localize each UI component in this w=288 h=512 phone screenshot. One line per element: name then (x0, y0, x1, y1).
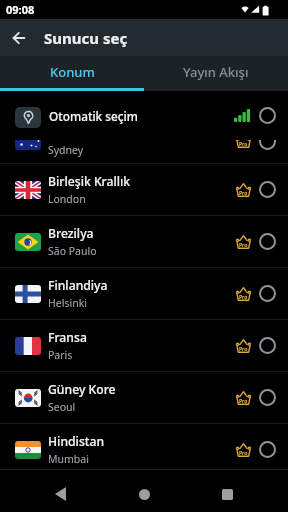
button[interactable] (259, 233, 276, 250)
button[interactable]: Güney Kore (0, 372, 288, 423)
button[interactable] (0, 19, 38, 56)
button[interactable] (259, 389, 276, 406)
button[interactable]: Hindistan (0, 424, 288, 475)
staticText: Hindistan (48, 433, 105, 450)
staticText: Pro (239, 242, 248, 249)
staticText: Pro (239, 398, 248, 405)
staticText: Sunucu seç (44, 28, 128, 48)
button[interactable]: Birleşik Krallık (0, 164, 288, 215)
staticText: Brezilya (48, 225, 94, 242)
button[interactable]: Otomatik seçim (0, 91, 288, 140)
staticText: Pro (239, 141, 248, 148)
button[interactable] (259, 285, 276, 302)
staticText: Seoul (48, 400, 76, 414)
staticText: Güney Kore (48, 381, 116, 398)
staticText: Pro (239, 346, 248, 353)
staticText: Helsinki (48, 296, 87, 310)
button[interactable] (259, 337, 276, 354)
button[interactable] (259, 181, 276, 198)
staticText: Sydney (48, 143, 84, 157)
button[interactable]: Brezilya (0, 216, 288, 267)
staticText: London (48, 192, 86, 206)
button[interactable]: Finlandiya (0, 268, 288, 319)
button[interactable] (259, 441, 276, 458)
button[interactable]: Sydney (0, 140, 288, 163)
staticText: Otomatik seçim (49, 108, 138, 124)
staticText: Yayın Akışı (183, 63, 249, 81)
staticText: Pro (239, 294, 248, 301)
button[interactable] (259, 107, 276, 124)
staticText: Fransa (48, 329, 87, 346)
button[interactable] (259, 140, 276, 150)
button[interactable]: Konum (0, 56, 144, 88)
button[interactable] (43, 480, 77, 508)
staticText: São Paulo (48, 244, 97, 258)
button[interactable] (210, 480, 244, 508)
staticText: Mumbai (48, 452, 89, 466)
staticText: Konum (50, 63, 95, 81)
staticText: Finlandiya (48, 277, 108, 294)
staticText: 09:08 (6, 2, 35, 17)
staticText: Pro (239, 190, 248, 197)
button[interactable]: Yayın Akışı (144, 56, 288, 88)
staticText: Paris (48, 348, 73, 362)
staticText: Pro (239, 450, 248, 457)
button[interactable]: Fransa (0, 320, 288, 371)
button[interactable] (127, 480, 161, 508)
staticText: Birleşik Krallık (48, 173, 131, 190)
